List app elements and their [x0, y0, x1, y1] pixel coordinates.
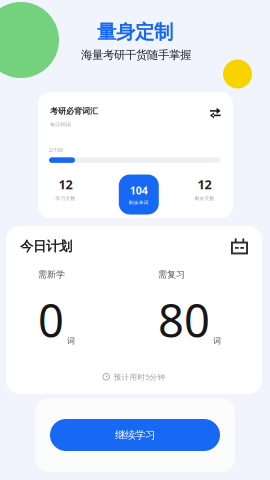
button[interactable]: 继续学习 [50, 419, 220, 451]
button[interactable]: 12 [195, 176, 215, 201]
staticText: 剩余单词 [129, 200, 149, 206]
staticText: 海量考研干货随手掌握 [81, 48, 191, 62]
staticText: 学习天数 [55, 195, 75, 201]
staticText: 词 [213, 336, 221, 346]
button[interactable]: 日历 [231, 238, 248, 254]
staticText: 0 [38, 289, 64, 351]
button[interactable]: 12 [55, 176, 75, 201]
staticText: 词 [67, 336, 75, 346]
staticText: 考研必背词汇 [50, 106, 98, 116]
button[interactable]: 切换词书 [210, 106, 221, 119]
staticText: 12 [58, 176, 72, 193]
staticText: 今日计划 [20, 238, 72, 255]
staticText: 需复习 [158, 269, 185, 280]
staticText: 2/100 [49, 147, 63, 153]
staticText: 12 [198, 176, 212, 193]
staticText: 量身定制 [97, 20, 173, 44]
staticText: 剩余天数 [195, 195, 215, 201]
button[interactable]: 104 [119, 174, 159, 214]
staticText: 104 [130, 183, 148, 198]
staticText: 每日80词 [50, 121, 71, 128]
staticText: 预计用时5分钟 [113, 372, 165, 382]
staticText: 80 [158, 289, 210, 351]
staticText: 需新学 [38, 269, 65, 280]
staticText: 继续学习 [115, 428, 155, 442]
